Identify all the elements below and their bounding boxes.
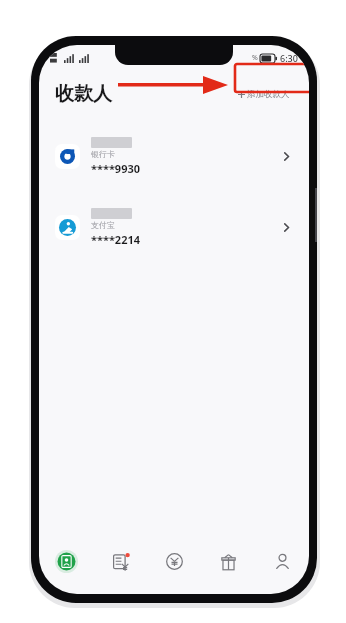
staticText: ****2214 xyxy=(91,232,141,247)
staticText: ****9930 xyxy=(91,161,141,176)
button[interactable]: 查看详情 xyxy=(277,147,295,165)
button[interactable]: 收款人 xyxy=(39,541,93,581)
staticText: 收款人 xyxy=(55,82,112,106)
button[interactable]: 账单 xyxy=(93,541,147,581)
button[interactable]: 查看详情 xyxy=(277,218,295,236)
button[interactable]: 收款 xyxy=(147,541,201,581)
staticText: 6:30 xyxy=(280,52,298,64)
staticText: 添加收款人 xyxy=(247,89,290,100)
staticText: 银行卡 xyxy=(91,149,115,159)
button[interactable]: 支付宝 xyxy=(39,199,309,255)
button[interactable]: 银行卡 xyxy=(39,128,309,184)
button[interactable]: 添加收款人 xyxy=(231,84,297,105)
staticText: 支付宝 xyxy=(91,220,115,230)
button[interactable]: 我的 xyxy=(255,541,309,581)
staticText: % xyxy=(252,53,258,63)
button[interactable]: 礼品 xyxy=(201,541,255,581)
